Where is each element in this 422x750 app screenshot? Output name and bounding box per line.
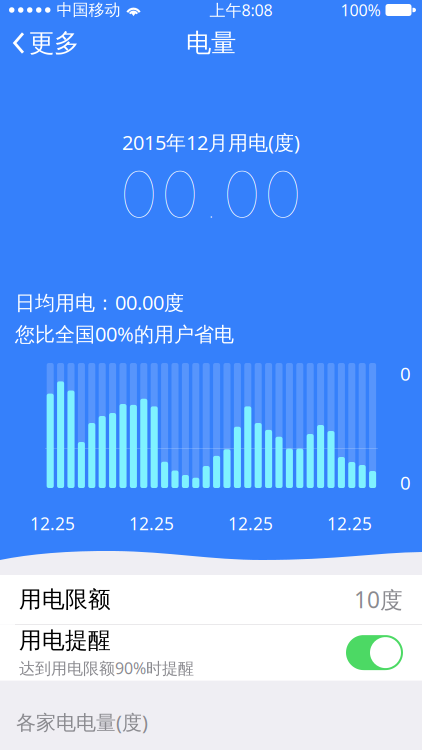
staticText: 更多 [29,27,79,58]
staticText: 2015年12月用电(度) [122,129,300,156]
staticText: 12.25 [129,512,174,535]
staticText: 日均用电：00.00度 [15,289,184,316]
staticText: 10度 [354,584,403,614]
staticText: 100% [340,0,380,21]
staticText: 12.25 [228,512,273,535]
staticText: 用电限额 [19,586,111,613]
staticText: 0 [400,361,411,386]
button[interactable]: 用电限额 [0,575,422,624]
staticText: 中国移动 [56,0,120,20]
staticText: 达到用电限额90%时提醒 [19,657,194,679]
button[interactable]: 用电提醒开关 [346,635,403,670]
staticText: 您比全国00%的用户省电 [15,321,234,347]
staticText: 电量 [186,27,236,58]
staticText: 用电提醒 [19,627,111,654]
staticText: 00.00 [120,146,301,242]
staticText: 上午8:08 [209,0,272,21]
staticText: 各家电电量(度) [16,709,148,735]
staticText: 0 [400,470,411,495]
button[interactable]: 各家电电量(度) [0,702,422,742]
staticText: 12.25 [327,512,372,535]
button[interactable]: 更多 [0,18,79,67]
staticText: 12.25 [30,512,75,535]
